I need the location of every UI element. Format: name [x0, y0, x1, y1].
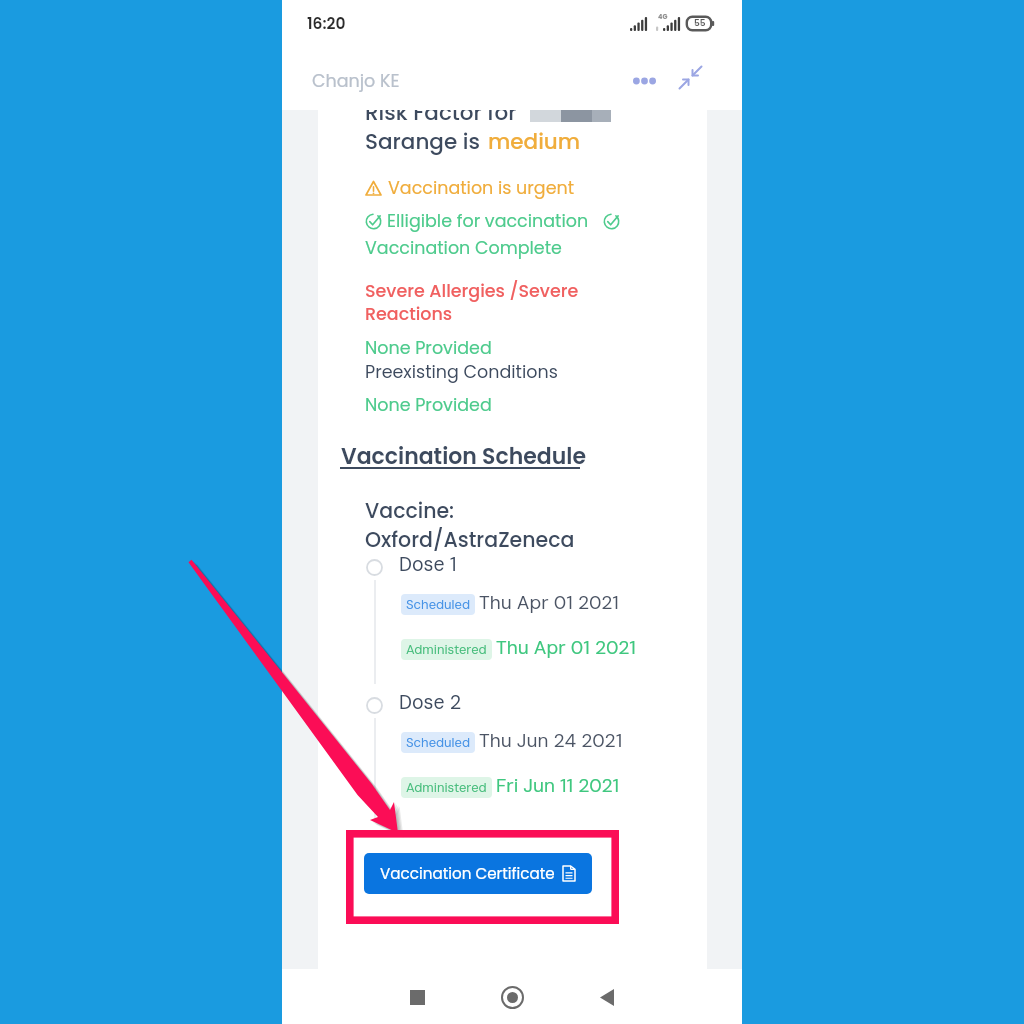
- button[interactable]: More options: [624, 61, 664, 101]
- staticText: Elligible for vaccination: [387, 209, 589, 234]
- staticText: Dose 1: [399, 552, 457, 577]
- button[interactable]: Collapse: [671, 58, 709, 96]
- staticText: Vaccination Complete: [365, 236, 562, 261]
- staticText: Vaccination Schedule: [341, 441, 586, 472]
- staticText: 55: [694, 17, 706, 30]
- staticText: Thu Jun 24 2021: [479, 728, 623, 753]
- staticText: medium: [488, 126, 581, 156]
- staticText: Administered: [406, 779, 487, 796]
- button[interactable]: Back: [585, 975, 629, 1019]
- staticText: Scheduled: [406, 596, 470, 613]
- button[interactable]: Vaccination Certificate: [364, 853, 592, 894]
- button[interactable]: Home: [490, 975, 534, 1019]
- staticText: Oxford/AstraZeneca: [365, 525, 575, 554]
- staticText: Reactions: [365, 302, 453, 327]
- staticText: 4G: [658, 12, 668, 21]
- staticText: Sarange is: [365, 126, 486, 156]
- staticText: Dose 2: [399, 690, 462, 715]
- staticText: Risk Factor for: [365, 110, 517, 127]
- staticText: Thu Apr 01 2021: [496, 635, 636, 660]
- staticText: None Provided: [365, 336, 492, 361]
- staticText: Chanjo KE: [312, 69, 400, 94]
- button[interactable]: Recents: [395, 975, 439, 1019]
- staticText: Vaccine:: [365, 496, 455, 525]
- staticText: Severe Allergies /Severe: [365, 279, 579, 304]
- staticText: None Provided: [365, 393, 492, 418]
- staticText: Preexisting Conditions: [365, 360, 558, 385]
- staticText: 16:20: [307, 13, 346, 35]
- staticText: Thu Apr 01 2021: [479, 590, 619, 615]
- staticText: Fri Jun 11 2021: [496, 773, 620, 798]
- staticText: Administered: [406, 641, 487, 658]
- staticText: Scheduled: [406, 734, 470, 751]
- staticText: Vaccination is urgent: [388, 176, 575, 201]
- staticText: Vaccination Certificate: [380, 863, 555, 884]
